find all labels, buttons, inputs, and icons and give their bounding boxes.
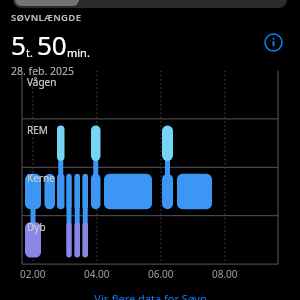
staticText: 04.00 bbox=[84, 267, 110, 281]
button[interactable] bbox=[13, 0, 287, 8]
button[interactable]: Vis flere data for Søvn bbox=[0, 291, 300, 300]
button[interactable]: Oplysninger bbox=[261, 30, 285, 54]
staticText: SØVNLÆNGDE bbox=[11, 11, 82, 24]
staticText: 50 bbox=[37, 27, 67, 62]
staticText: min. bbox=[67, 45, 90, 60]
staticText: 28. feb. 2025 bbox=[11, 64, 75, 78]
staticText: t. bbox=[26, 45, 33, 60]
staticText: Vis flere data for Søvn bbox=[94, 291, 207, 300]
staticText: 02.00 bbox=[20, 267, 46, 281]
staticText: 06.00 bbox=[148, 267, 174, 281]
staticText: 5 bbox=[11, 27, 26, 62]
staticText: 08.00 bbox=[212, 267, 238, 281]
staticText: Vågen bbox=[27, 75, 57, 89]
staticText: REM bbox=[27, 123, 48, 137]
staticText: Dyb bbox=[27, 220, 46, 234]
staticText: Kerne bbox=[27, 171, 55, 185]
